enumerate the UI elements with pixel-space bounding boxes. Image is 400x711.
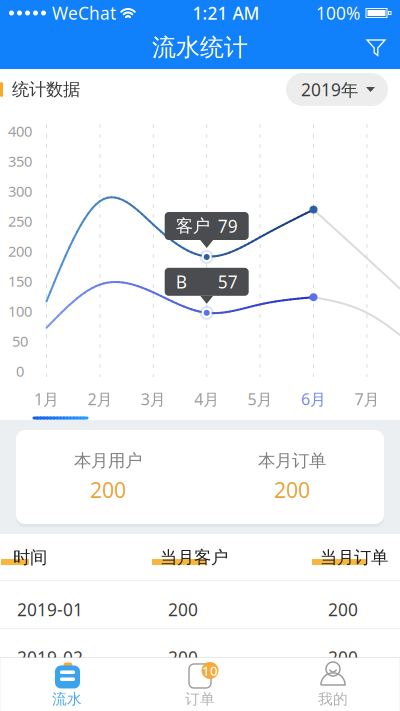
staticText: 本月订单	[258, 450, 326, 471]
staticText: 订单	[185, 690, 215, 708]
staticText: 5月	[248, 388, 273, 410]
staticText: 0	[16, 361, 24, 381]
staticText: B	[176, 270, 187, 293]
button[interactable]: 10	[133, 660, 266, 708]
staticText: 150	[8, 271, 32, 291]
button[interactable]: 筛选	[352, 25, 400, 69]
button[interactable]: 2019年	[286, 73, 388, 106]
staticText: 3月	[141, 388, 166, 410]
staticText: 200	[328, 598, 358, 621]
staticText: 200	[168, 598, 198, 621]
staticText: 当月订单	[320, 547, 388, 568]
staticText: 200	[274, 475, 310, 504]
staticText: 2019年	[301, 78, 358, 101]
staticText: 流水	[52, 690, 82, 708]
staticText: 350	[8, 151, 32, 171]
staticText: 统计数据	[12, 79, 80, 100]
staticText: 100	[8, 301, 32, 321]
staticText: 400	[8, 121, 32, 141]
staticText: 10	[202, 662, 218, 679]
staticText: 200	[328, 646, 358, 669]
staticText: 流水统计	[152, 33, 248, 62]
staticText: 250	[8, 211, 32, 231]
staticText: 7月	[354, 388, 379, 410]
staticText: 时间	[13, 547, 47, 568]
staticText: 100%	[316, 1, 360, 24]
staticText: 50	[12, 331, 28, 351]
staticText: 2019-02	[17, 646, 83, 669]
staticText: 6月	[301, 388, 326, 410]
staticText: 57	[218, 270, 238, 293]
staticText: 1:21 AM	[192, 1, 259, 24]
staticText: 2月	[87, 388, 112, 410]
button[interactable]: 流水	[0, 660, 133, 708]
staticText: 79	[218, 214, 238, 237]
staticText: 200	[8, 241, 32, 261]
staticText: 本月用户	[74, 450, 142, 471]
staticText: 200	[90, 475, 126, 504]
button[interactable]: 我的	[266, 660, 399, 708]
staticText: 4月	[194, 388, 219, 410]
staticText: 2019-01	[17, 598, 83, 621]
staticText: 200	[168, 646, 198, 669]
staticText: WeChat	[52, 1, 116, 24]
staticText: 当月客户	[160, 547, 228, 568]
staticText: 1月	[34, 388, 59, 410]
staticText: 300	[8, 181, 32, 201]
staticText: 我的	[318, 690, 348, 708]
staticText: 客户	[176, 215, 210, 237]
